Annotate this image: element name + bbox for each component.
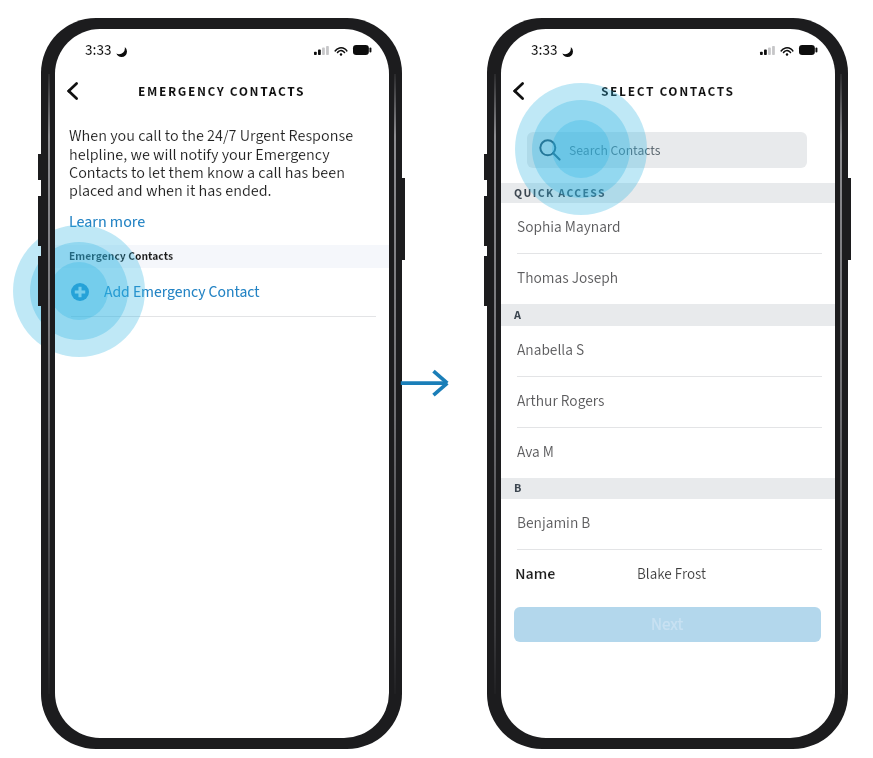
staticText: Search Contacts <box>569 141 661 160</box>
staticText: When you call to the 24/7 Urgent Respons… <box>69 125 361 203</box>
staticText: EMERGENCY CONTACTS <box>138 82 306 101</box>
staticText: QUICK ACCESS <box>514 185 607 202</box>
button[interactable]: Next <box>514 607 821 642</box>
button[interactable]: Anabella S <box>501 326 835 376</box>
button[interactable]: Learn more <box>69 211 146 234</box>
staticText: Anabella S <box>517 339 585 361</box>
staticText: 3:33 <box>85 40 112 61</box>
staticText: Thomas Joseph <box>517 267 619 289</box>
button[interactable]: Thomas Joseph <box>501 254 835 304</box>
button[interactable]: Arthur Rogers <box>501 377 835 427</box>
staticText: Add Emergency Contact <box>104 281 260 303</box>
staticText: Arthur Rogers <box>517 390 605 412</box>
staticText: A <box>514 307 522 324</box>
staticText: Name <box>515 563 556 586</box>
staticText: Learn more <box>69 211 146 234</box>
button[interactable]: Back <box>55 73 91 109</box>
staticText: Emergency Contacts <box>69 248 174 265</box>
staticText: B <box>514 480 522 497</box>
button[interactable]: Add Emergency Contact <box>55 268 389 316</box>
staticText: Next <box>651 613 684 637</box>
button[interactable]: Sophia Maynard <box>501 203 835 253</box>
button[interactable]: Ava M <box>501 428 835 478</box>
button[interactable]: Benjamin B <box>501 499 835 549</box>
staticText: 3:33 <box>531 40 558 61</box>
staticText: Benjamin B <box>517 512 591 534</box>
button[interactable]: Search Contacts <box>527 132 807 168</box>
staticText: Blake Frost <box>637 564 707 585</box>
staticText: Sophia Maynard <box>517 216 621 238</box>
button[interactable]: Back <box>501 73 537 109</box>
staticText: SELECT CONTACTS <box>601 82 735 101</box>
staticText: Ava M <box>517 441 554 463</box>
